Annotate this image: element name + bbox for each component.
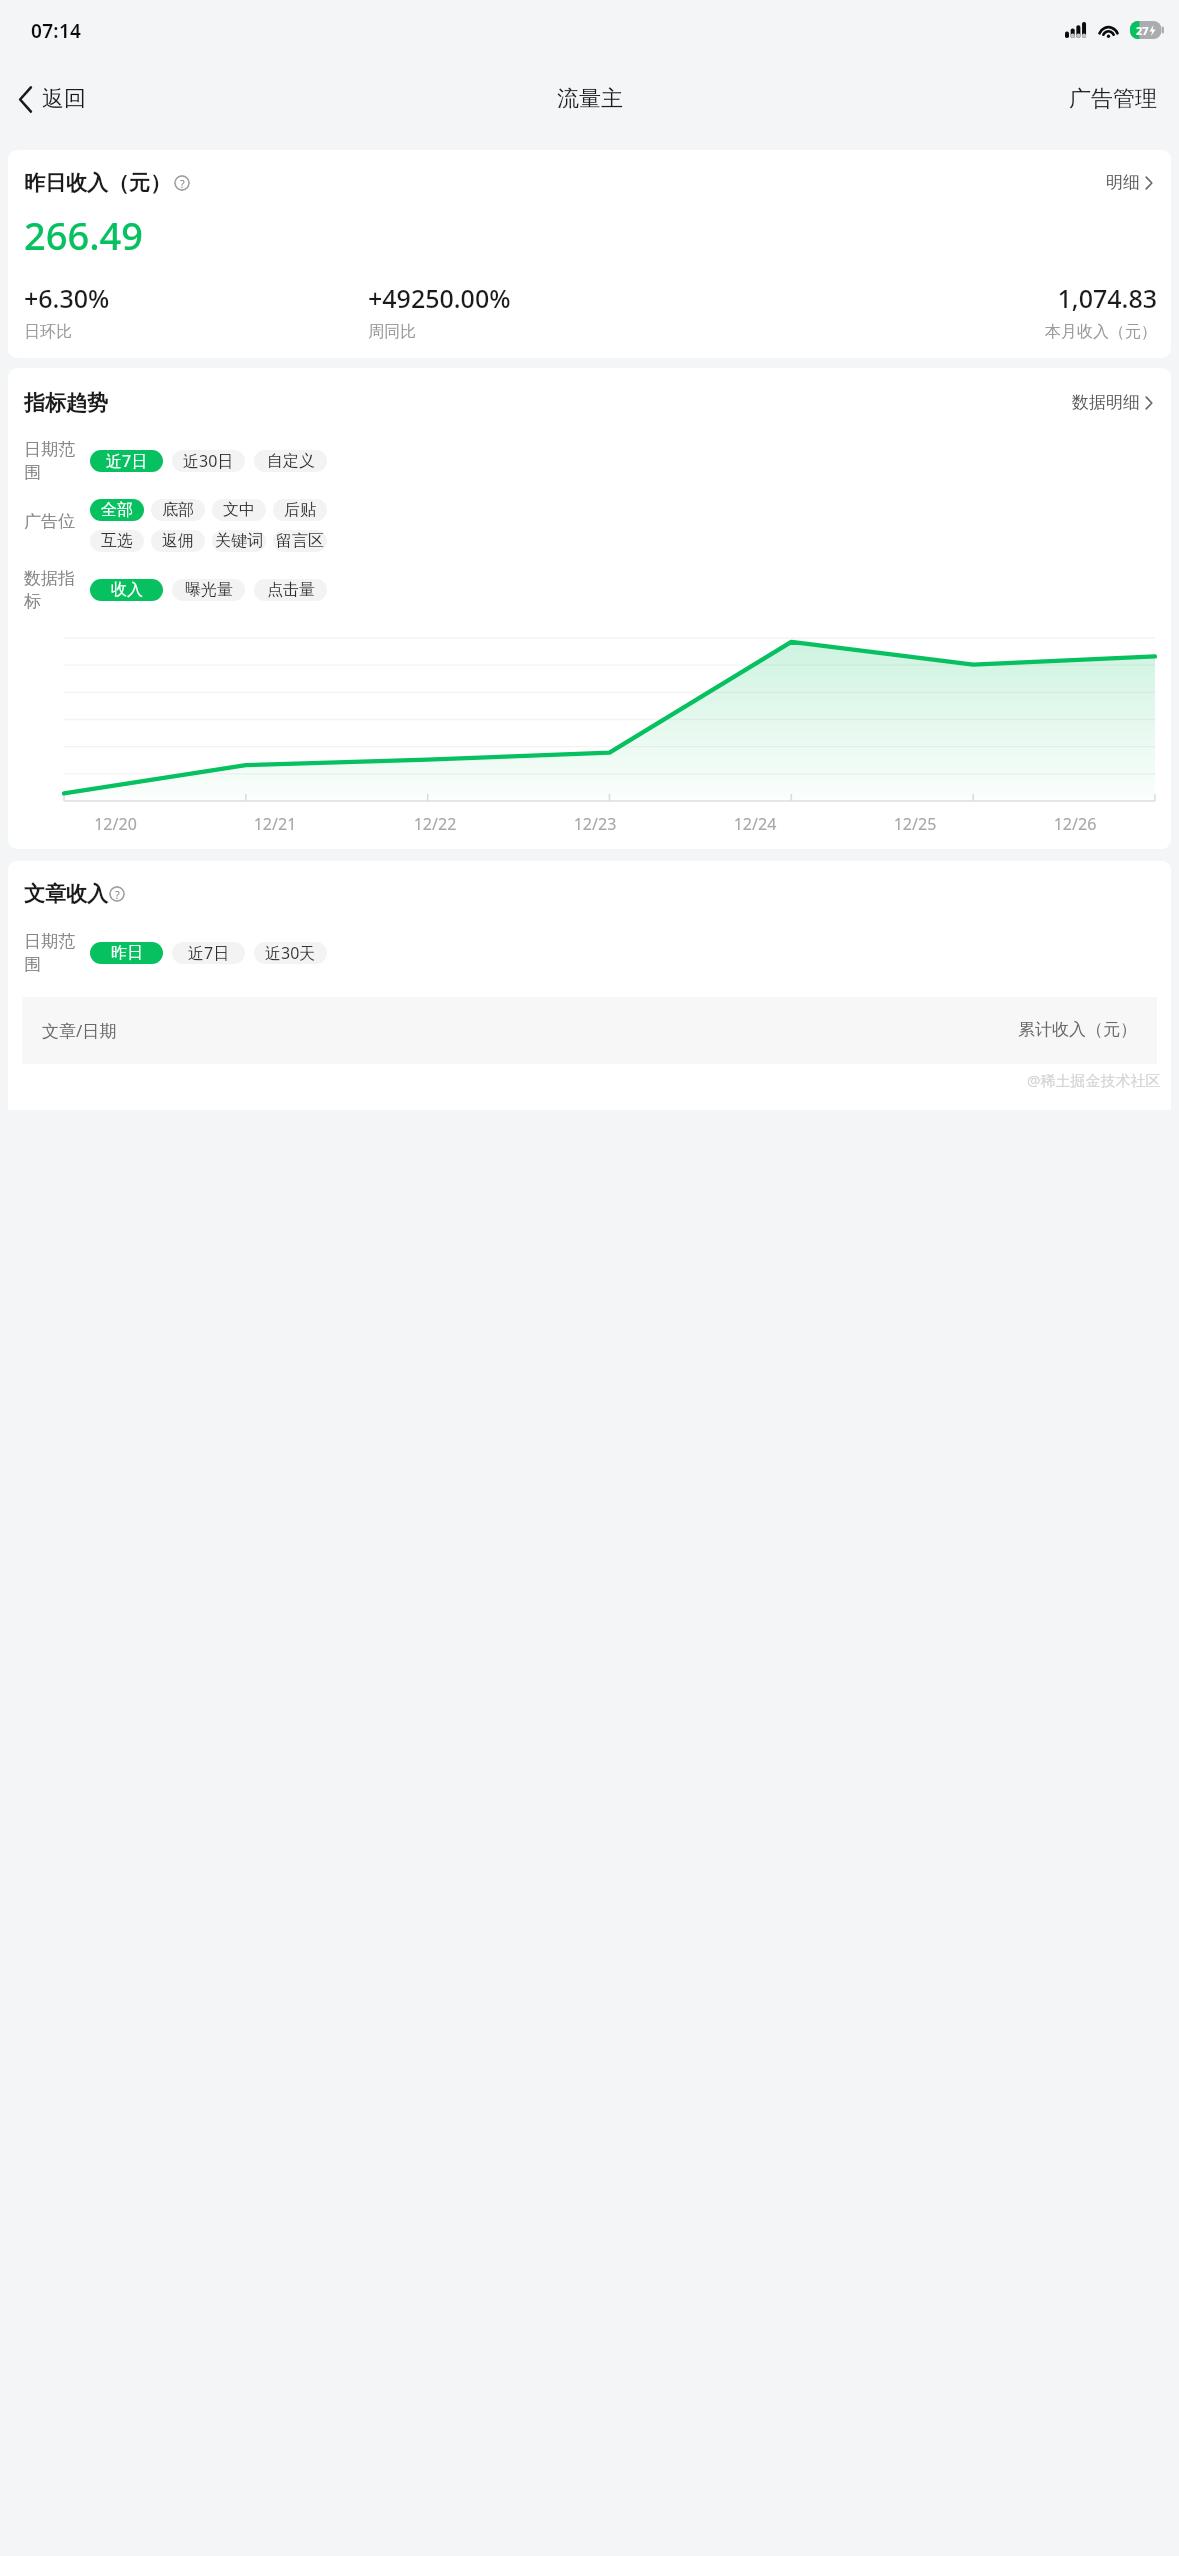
button[interactable]: 数据明细 xyxy=(1068,388,1157,417)
staticText: 近7日 xyxy=(106,450,148,472)
button[interactable]: 收入 xyxy=(90,579,163,601)
staticText: 1,074.83 xyxy=(814,281,1157,315)
staticText: 周同比 xyxy=(368,322,814,342)
button[interactable]: 文中 xyxy=(212,499,266,521)
button[interactable]: 曝光量 xyxy=(172,579,245,601)
staticText: 近7日 xyxy=(188,942,230,964)
staticText: 昨日收入（元） xyxy=(24,170,171,196)
staticText: 12/26 xyxy=(995,813,1155,835)
button[interactable]: 全部 xyxy=(90,499,144,521)
button[interactable]: 自定义 xyxy=(254,450,327,472)
staticText: 12/20 xyxy=(36,813,195,835)
staticText: 27 xyxy=(1136,23,1149,38)
staticText: 点击量 xyxy=(267,580,315,600)
staticText: 互选 xyxy=(101,531,133,551)
staticText: @稀土掘金技术社区 xyxy=(1027,1070,1161,1090)
button[interactable]: 关键词 xyxy=(212,530,266,552)
staticText: 12/23 xyxy=(515,813,675,835)
staticText: 07:14 xyxy=(31,18,82,44)
staticText: 返回 xyxy=(42,85,86,113)
staticText: 数据明细 xyxy=(1072,392,1140,413)
staticText: 关键词 xyxy=(215,531,263,551)
button[interactable]: 返回 xyxy=(12,79,92,119)
button[interactable]: 近7日 xyxy=(172,942,245,964)
staticText: 12/22 xyxy=(355,813,515,835)
staticText: 流量主 xyxy=(557,85,623,113)
button[interactable]: 返佣 xyxy=(151,530,205,552)
button[interactable]: 明细 xyxy=(1102,168,1157,197)
staticText: 12/24 xyxy=(675,813,835,835)
staticText: 日期范围 xyxy=(24,931,90,975)
button[interactable]: 点击量 xyxy=(254,579,327,601)
staticText: 文中 xyxy=(223,500,255,520)
staticText: 12/21 xyxy=(195,813,355,835)
staticText: ? xyxy=(180,176,185,191)
staticText: 文章/日期 xyxy=(42,1019,117,1042)
button[interactable]: 留言区 xyxy=(273,530,327,552)
button[interactable]: 近7日 xyxy=(90,450,163,472)
button[interactable]: 底部 xyxy=(151,499,205,521)
staticText: 广告位 xyxy=(24,511,90,532)
staticText: 收入 xyxy=(111,580,143,600)
staticText: 近30天 xyxy=(265,942,316,964)
staticText: 近30日 xyxy=(183,450,234,472)
staticText: 日期范围 xyxy=(24,439,90,483)
staticText: 明细 xyxy=(1106,172,1140,193)
staticText: 全部 xyxy=(101,500,133,520)
staticText: 广告管理 xyxy=(1069,85,1157,113)
button[interactable]: 互选 xyxy=(90,530,144,552)
staticText: 曝光量 xyxy=(185,580,233,600)
staticText: 文章收入 xyxy=(24,881,108,907)
staticText: 累计收入（元） xyxy=(1018,1019,1137,1040)
staticText: 指标趋势 xyxy=(24,390,108,416)
button[interactable]: 后贴 xyxy=(273,499,327,521)
staticText: ? xyxy=(115,887,120,902)
staticText: 本月收入（元） xyxy=(814,322,1157,342)
staticText: 留言区 xyxy=(276,531,324,551)
staticText: 后贴 xyxy=(284,500,316,520)
staticText: +49250.00% xyxy=(368,281,814,315)
staticText: 12/25 xyxy=(835,813,995,835)
staticText: 底部 xyxy=(162,500,194,520)
staticText: +6.30% xyxy=(24,281,368,315)
staticText: 日环比 xyxy=(24,322,368,342)
staticText: 自定义 xyxy=(267,451,315,471)
button[interactable]: 近30天 xyxy=(254,942,327,964)
staticText: 返佣 xyxy=(162,531,194,551)
button[interactable]: 说明 xyxy=(109,886,125,902)
staticText: 266.49 xyxy=(24,209,144,261)
button[interactable]: 广告管理 xyxy=(1063,77,1163,121)
staticText: 数据指标 xyxy=(24,568,90,612)
staticText: 昨日 xyxy=(111,943,143,963)
button[interactable]: 说明 xyxy=(174,175,190,191)
button[interactable]: 昨日 xyxy=(90,942,163,964)
button[interactable]: 近30日 xyxy=(172,450,245,472)
